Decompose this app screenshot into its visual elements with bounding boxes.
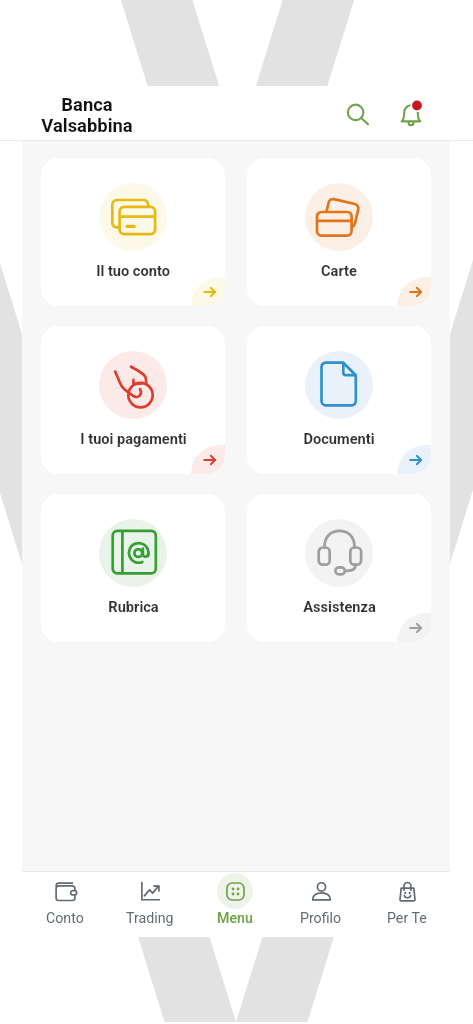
button[interactable]: Trading (107, 872, 192, 937)
button[interactable]: Documenti (397, 445, 431, 474)
staticText: Per Te (387, 910, 427, 927)
button[interactable]: Rubrica (41, 494, 225, 642)
button[interactable]: Profilo (278, 872, 364, 937)
staticText: I tuoi pagamenti (80, 430, 187, 447)
button[interactable]: Assistenza (247, 494, 431, 642)
button[interactable]: Notifiche (389, 91, 433, 135)
button[interactable]: Carte (247, 158, 431, 306)
staticText: Assistenza (303, 598, 376, 615)
button[interactable]: I tuoi pagamenti (41, 326, 225, 474)
staticText: Trading (126, 910, 174, 927)
staticText: Menu (217, 910, 253, 927)
button[interactable]: Assistenza (397, 613, 431, 642)
staticText: Profilo (300, 910, 342, 927)
button[interactable]: Cerca (336, 91, 380, 135)
staticText: Il tuo conto (96, 262, 170, 279)
button[interactable]: Documenti (247, 326, 431, 474)
button[interactable]: Conto (22, 872, 107, 937)
staticText: Carte (321, 262, 357, 279)
button[interactable]: Carte (397, 277, 431, 306)
button[interactable]: Menu (192, 872, 278, 937)
staticText: Rubrica (108, 598, 159, 615)
button[interactable]: Il tuo conto (41, 158, 225, 306)
button[interactable]: I tuoi pagamenti (191, 445, 225, 474)
button[interactable]: Per Te (364, 872, 450, 937)
staticText: Documenti (303, 430, 375, 447)
button[interactable]: Il tuo conto (191, 277, 225, 306)
staticText: Banca Valsabbina (41, 94, 133, 136)
staticText: Conto (46, 910, 84, 927)
